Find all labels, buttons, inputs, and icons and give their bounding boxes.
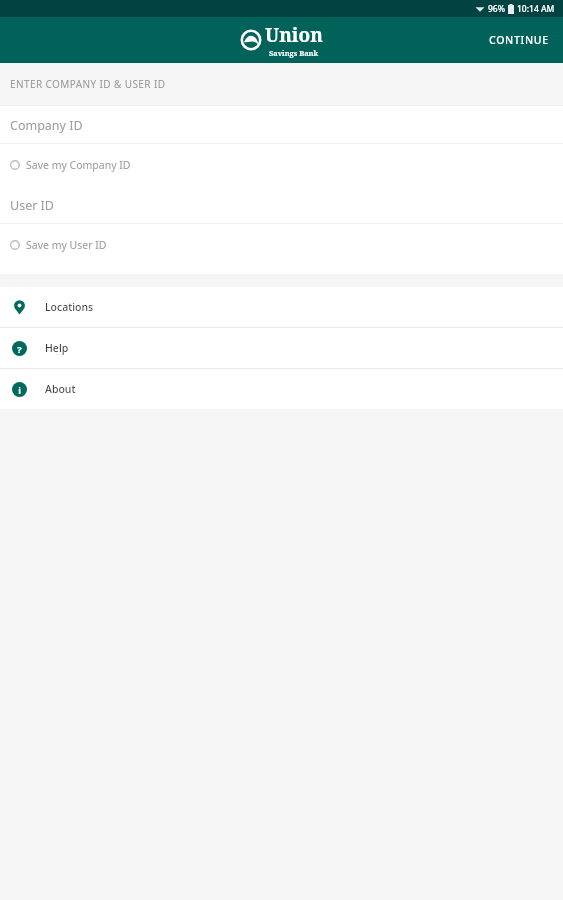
staticText: 96% <box>488 3 505 15</box>
staticText: Save my Company ID <box>26 158 131 172</box>
button[interactable]: i <box>0 369 563 409</box>
staticText: i <box>18 384 21 396</box>
button[interactable]: Locations <box>0 287 563 327</box>
staticText: Help <box>45 341 69 355</box>
button[interactable]: User ID <box>0 186 563 224</box>
button[interactable]: Company ID <box>0 106 563 144</box>
staticText: CONTINUE <box>489 33 549 47</box>
staticText: Savings Bank <box>269 48 319 58</box>
staticText: About <box>45 382 76 396</box>
staticText: Company ID <box>10 117 83 134</box>
button[interactable]: ? <box>0 328 563 368</box>
button[interactable]: Save my User ID <box>0 224 563 266</box>
staticText: User ID <box>10 197 54 214</box>
staticText: 10:14 AM <box>517 3 555 15</box>
button[interactable]: CONTINUE <box>475 21 563 59</box>
staticText: Save my User ID <box>26 238 107 252</box>
staticText: ENTER COMPANY ID & USER ID <box>10 77 166 91</box>
staticText: Locations <box>45 300 94 314</box>
staticText: ? <box>17 343 22 355</box>
staticText: Union <box>265 22 323 48</box>
button[interactable]: Save my Company ID <box>0 144 563 186</box>
